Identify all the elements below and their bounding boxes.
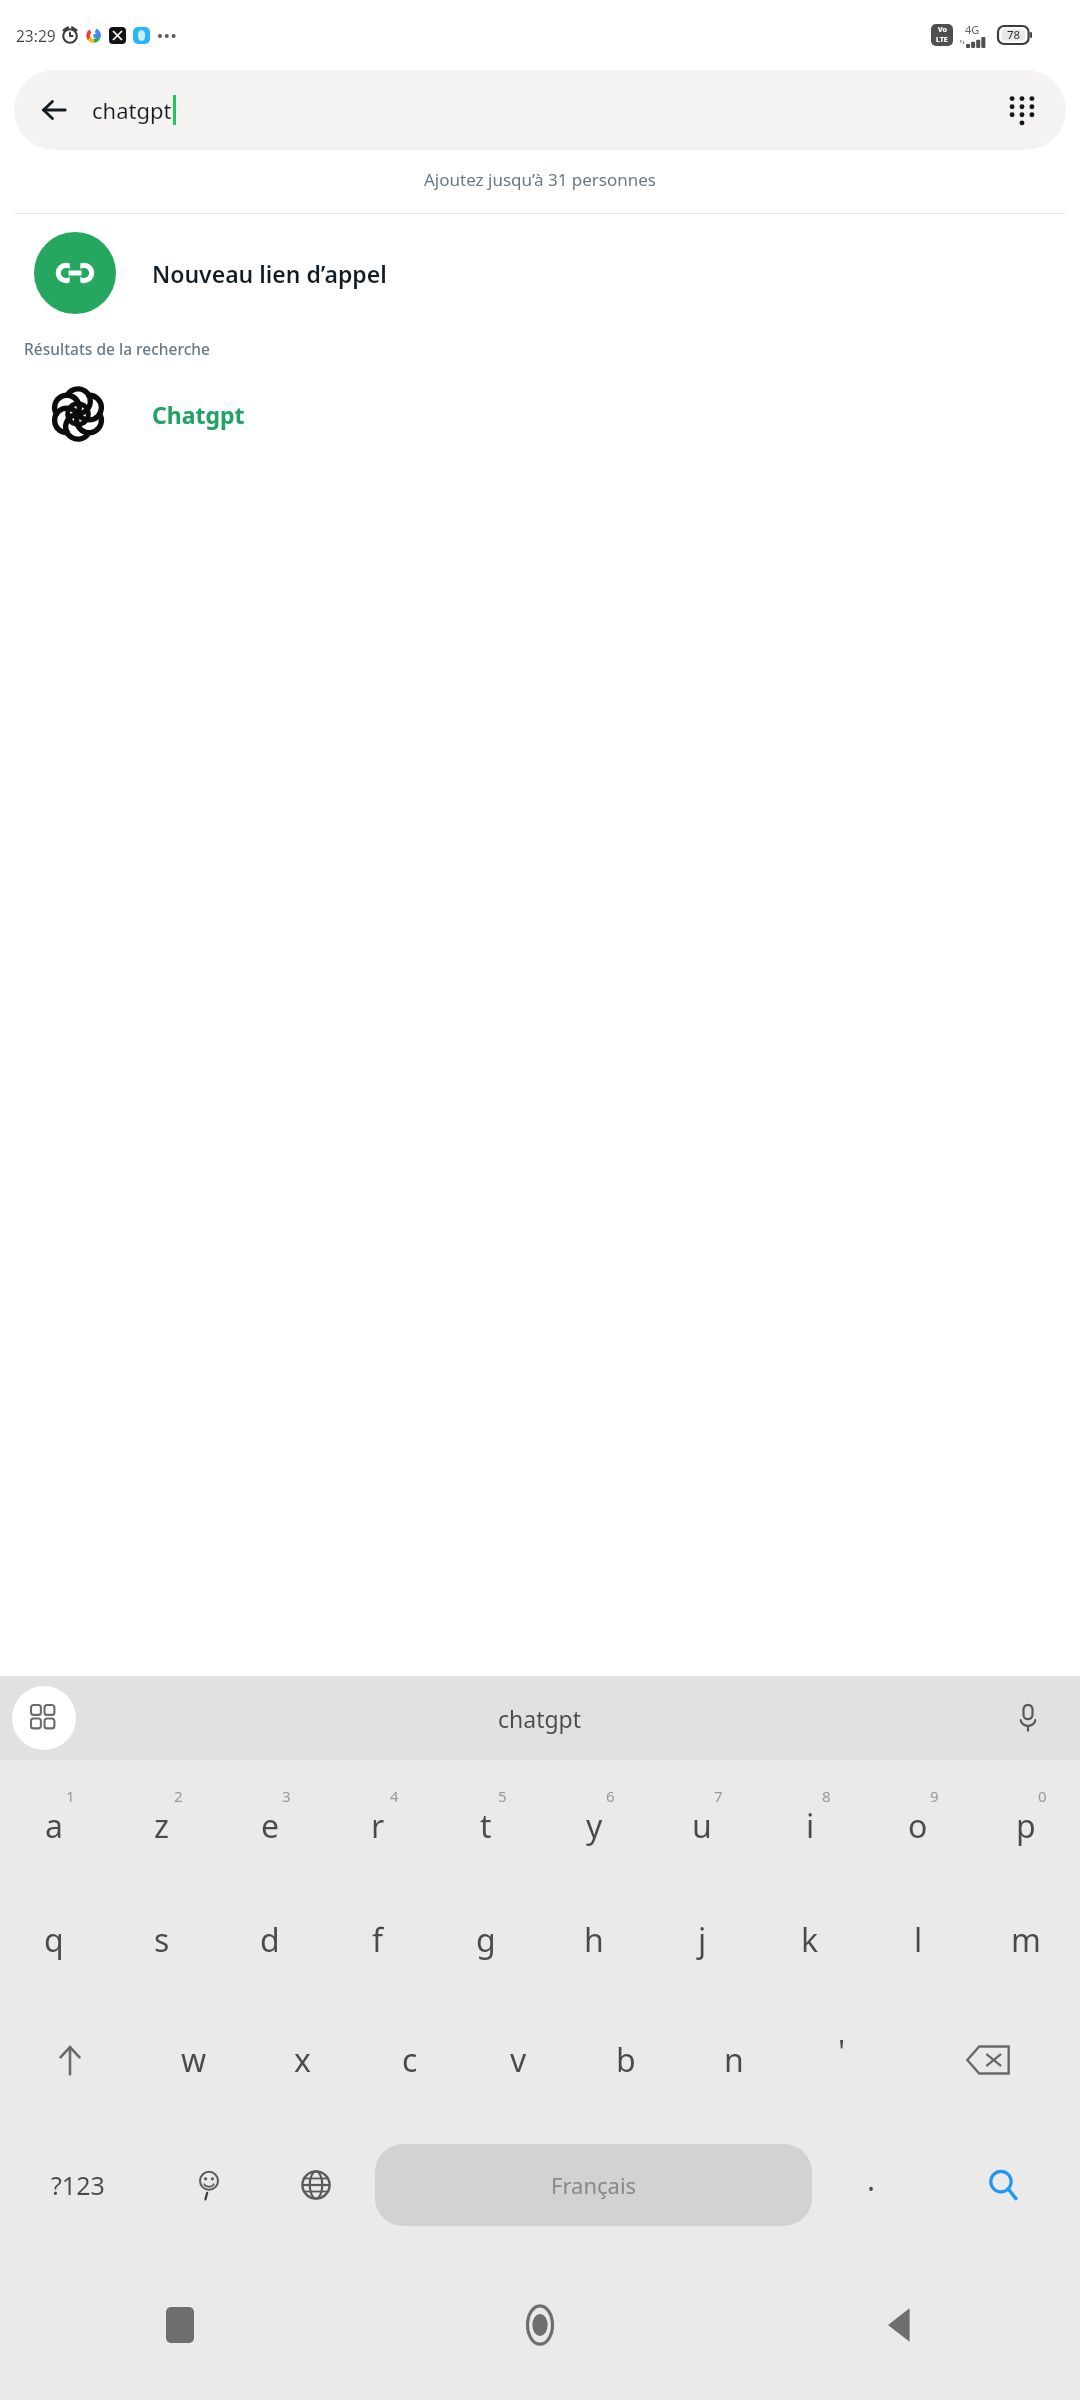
button[interactable]: '	[788, 2000, 896, 2120]
staticText: 7	[714, 1786, 723, 1806]
staticText: j	[698, 1918, 707, 1962]
button[interactable]: y	[540, 1760, 648, 1880]
staticText: e	[261, 1804, 280, 1848]
staticText: Ajoutez jusqu’à 31 personnes	[0, 168, 1080, 191]
staticText: r	[371, 1804, 385, 1848]
button[interactable]: Back	[28, 84, 80, 136]
staticText: .	[867, 2159, 876, 2200]
staticText: 1	[66, 1786, 75, 1806]
staticText: p	[1016, 1804, 1036, 1848]
staticText: Chatgpt	[152, 399, 245, 430]
button[interactable]: o	[864, 1760, 972, 1880]
staticText: 6	[606, 1786, 615, 1806]
staticText: n	[724, 2038, 744, 2082]
staticText: t	[480, 1804, 492, 1848]
button[interactable]: Nouveau lien d’appel	[0, 214, 1080, 332]
button[interactable]: z	[108, 1760, 216, 1880]
staticText: x	[294, 2038, 311, 2082]
button[interactable]: v	[464, 2000, 572, 2120]
button[interactable]: a	[0, 1760, 108, 1880]
button[interactable]: Backspace	[896, 2000, 1080, 2120]
button[interactable]: Home	[360, 2250, 720, 2400]
button[interactable]: Dialpad	[996, 84, 1048, 136]
button[interactable]: Search	[925, 2120, 1080, 2250]
staticText: c	[402, 2038, 418, 2082]
button[interactable]: p	[972, 1760, 1080, 1880]
staticText: v	[510, 2038, 527, 2082]
staticText: s	[154, 1918, 170, 1962]
staticText: o	[908, 1804, 928, 1848]
staticText: 5	[498, 1786, 507, 1806]
button[interactable]: Back	[720, 2250, 1080, 2400]
staticText: u	[692, 1804, 712, 1848]
button[interactable]: Change language	[262, 2120, 369, 2250]
button[interactable]: c	[356, 2000, 464, 2120]
staticText: 78	[1007, 27, 1021, 43]
button[interactable]: t	[432, 1760, 540, 1880]
staticText: chatgpt	[498, 1703, 582, 1734]
staticText: Français	[551, 2170, 637, 2200]
button[interactable]: Back	[14, 70, 1066, 150]
button[interactable]: l	[864, 1880, 972, 2000]
button[interactable]: j	[648, 1880, 756, 2000]
button[interactable]: h	[540, 1880, 648, 2000]
staticText: LTE	[936, 35, 948, 45]
button[interactable]: Emoji	[155, 2120, 262, 2250]
button[interactable]: Shift	[0, 2000, 140, 2120]
button[interactable]: s	[108, 1880, 216, 2000]
button[interactable]: e	[216, 1760, 324, 1880]
button[interactable]: Recent apps	[0, 2250, 360, 2400]
staticText: a	[45, 1804, 63, 1848]
button[interactable]: q	[0, 1880, 108, 2000]
staticText: Résultats de la recherche	[24, 338, 210, 359]
staticText: Vo	[938, 25, 947, 35]
staticText: 4	[390, 1786, 399, 1806]
staticText: ?123	[51, 2168, 105, 2202]
button[interactable]: Chatgpt	[0, 359, 1080, 469]
button[interactable]: i	[756, 1760, 864, 1880]
staticText: k	[801, 1918, 819, 1962]
button[interactable]: .	[818, 2120, 925, 2250]
button[interactable]: x	[248, 2000, 356, 2120]
button[interactable]: Voice input	[1000, 1690, 1056, 1746]
button[interactable]: Français	[375, 2144, 812, 2226]
button[interactable]: g	[432, 1880, 540, 2000]
staticText: i	[806, 1804, 815, 1848]
staticText: chatgpt	[92, 95, 172, 125]
staticText: 4G	[965, 22, 980, 37]
staticText: 8	[822, 1786, 831, 1806]
button[interactable]: Keyboard options	[12, 1686, 76, 1750]
button[interactable]: f	[324, 1880, 432, 2000]
button[interactable]: m	[972, 1880, 1080, 2000]
staticText: 23:29	[16, 25, 56, 46]
button[interactable]: k	[756, 1880, 864, 2000]
button[interactable]: b	[572, 2000, 680, 2120]
staticText: 0	[1038, 1786, 1047, 1806]
button[interactable]: n	[680, 2000, 788, 2120]
button[interactable]: ?123	[0, 2120, 155, 2250]
staticText: 3	[282, 1786, 291, 1806]
button[interactable]: r	[324, 1760, 432, 1880]
staticText: d	[260, 1918, 280, 1962]
staticText: h	[584, 1918, 604, 1962]
staticText: '	[838, 2030, 846, 2074]
staticText: b	[616, 2038, 636, 2082]
staticText: l	[914, 1918, 923, 1962]
staticText: y	[586, 1804, 603, 1848]
staticText: q	[44, 1918, 64, 1962]
button[interactable]: d	[216, 1880, 324, 2000]
staticText: z	[154, 1804, 170, 1848]
staticText: m	[1011, 1918, 1041, 1962]
staticText: w	[181, 2038, 207, 2082]
button[interactable]: w	[140, 2000, 248, 2120]
staticText: Nouveau lien d’appel	[152, 258, 387, 289]
staticText: f	[372, 1918, 384, 1962]
button[interactable]: u	[648, 1760, 756, 1880]
staticText: g	[476, 1918, 496, 1962]
staticText: 9	[930, 1786, 939, 1806]
staticText: 2	[174, 1786, 183, 1806]
